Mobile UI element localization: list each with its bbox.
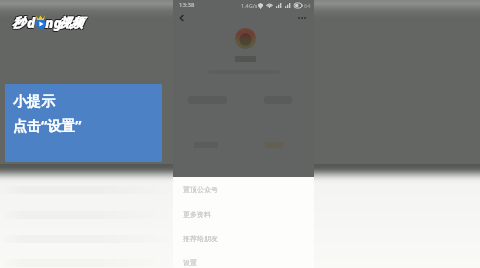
staticText: 设置 (183, 258, 197, 267)
staticText: d (26, 13, 35, 31)
staticText: 秒 (11, 16, 24, 32)
button[interactable]: 推荐给朋友 (173, 231, 314, 246)
staticText: ng (44, 15, 61, 33)
staticText: 13:38 (179, 1, 195, 9)
staticText: 秒 (12, 15, 25, 31)
button[interactable]: 更多资料 (173, 207, 314, 222)
staticText: 秒 (13, 14, 26, 30)
button[interactable]: Back (177, 13, 187, 23)
staticText: ng (44, 13, 61, 31)
staticText: 秒 (13, 16, 26, 32)
staticText: 视频 (58, 15, 83, 31)
button[interactable]: 设置 (173, 255, 314, 268)
staticText: 推荐给朋友 (183, 234, 218, 243)
staticText: ng (45, 15, 62, 33)
staticText: 视频 (59, 14, 84, 30)
button[interactable]: 小提示 (5, 84, 162, 162)
staticText: d (27, 13, 36, 31)
button[interactable]: 置顶公众号 (173, 182, 314, 197)
staticText: d (27, 15, 36, 33)
staticText: d (27, 14, 36, 32)
button[interactable]: More options (298, 15, 307, 20)
staticText: 视频 (59, 16, 84, 32)
staticText: ng (45, 14, 62, 32)
staticText: 视频 (57, 14, 82, 30)
staticText: 视频 (57, 16, 82, 32)
staticText: 点击“设置” (13, 116, 82, 135)
staticText: 秒 (11, 14, 24, 30)
staticText: 置顶公众号 (183, 185, 218, 194)
staticText: 1.4G/s (241, 2, 258, 9)
staticText: d (26, 15, 35, 33)
staticText: ng (45, 13, 62, 31)
staticText: 小提示 (13, 93, 55, 111)
staticText: 更多资料 (183, 210, 211, 219)
staticText: 64 (304, 2, 311, 9)
